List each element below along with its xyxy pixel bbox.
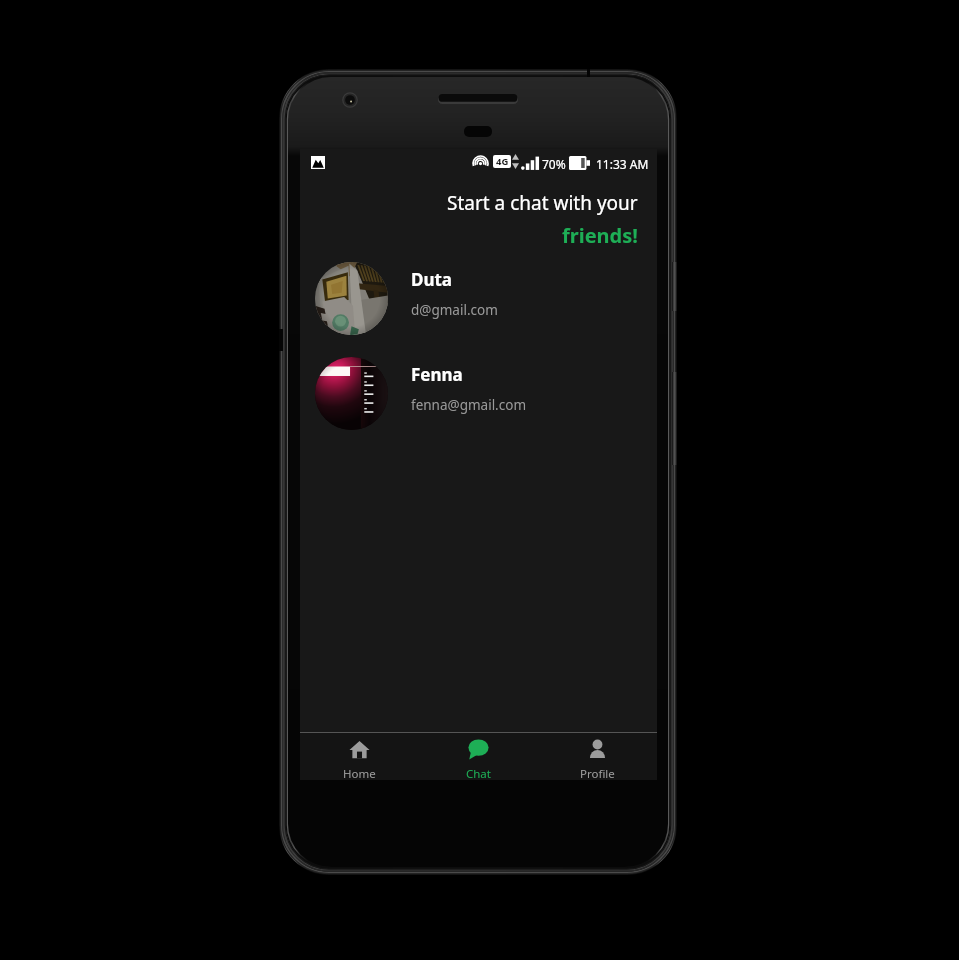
staticText: 70% [542,156,566,172]
staticText: Duta [411,268,453,291]
staticText: friends! [562,222,638,249]
staticText: 4G [496,155,509,168]
button[interactable]: Fenna [300,351,657,435]
staticText: d@gmail.com [411,301,498,319]
staticText: Fenna [411,363,463,386]
staticText: Chat [466,766,491,780]
button[interactable]: Duta [300,256,657,340]
button[interactable]: Profile [538,733,657,780]
staticText: Start a chat with your [447,190,638,216]
button[interactable]: Chat [419,733,538,780]
staticText: Home [343,766,376,780]
button[interactable]: Home [300,733,419,780]
other: Wi-Fi hotspot [472,154,489,171]
staticText: fenna@gmail.com [411,396,527,414]
staticText: Profile [580,766,615,780]
staticText: 11:33 AM [596,156,649,172]
